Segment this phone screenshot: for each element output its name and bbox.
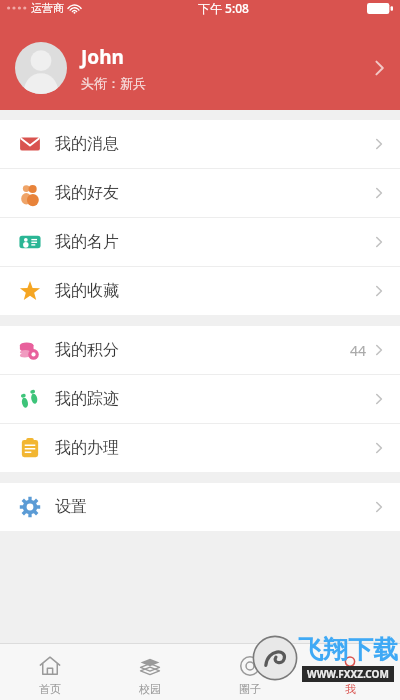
staticText: 我的踪迹	[55, 389, 119, 409]
staticText: 我的办理	[55, 438, 119, 458]
button[interactable]: 我的踪迹	[0, 375, 400, 423]
staticText: 校园	[139, 682, 161, 696]
staticText: 44	[350, 341, 367, 360]
staticText: 我的收藏	[55, 281, 119, 301]
staticText: 我的好友	[55, 183, 119, 203]
button[interactable]: 我的收藏	[0, 267, 400, 315]
staticText: 头衔：新兵	[81, 75, 146, 91]
button[interactable]: John	[0, 25, 400, 110]
staticText: 我的名片	[55, 232, 119, 252]
button[interactable]: 我	[300, 648, 400, 696]
staticText: John	[81, 44, 124, 70]
staticText: 我的消息	[55, 134, 119, 154]
staticText: 我的积分	[55, 340, 119, 360]
staticText: 圈子	[239, 682, 261, 696]
button[interactable]: 设置	[0, 483, 400, 531]
button[interactable]: 我的名片	[0, 218, 400, 266]
staticText: WWW.FXXZ.COM	[307, 667, 389, 681]
button[interactable]: 首页	[0, 648, 100, 696]
staticText: 首页	[39, 682, 61, 696]
staticText: 运营商	[31, 1, 64, 15]
button[interactable]: 我的办理	[0, 424, 400, 472]
button[interactable]: 我的积分	[0, 326, 400, 374]
staticText: 下午 5:08	[198, 0, 249, 16]
button[interactable]: 圈子	[200, 648, 300, 696]
staticText: 飞翔下载	[298, 634, 398, 665]
staticText: 设置	[55, 497, 87, 517]
button[interactable]: 我的消息	[0, 120, 400, 168]
staticText: 我	[345, 682, 356, 696]
button[interactable]: 校园	[100, 648, 200, 696]
button[interactable]: 我的好友	[0, 169, 400, 217]
